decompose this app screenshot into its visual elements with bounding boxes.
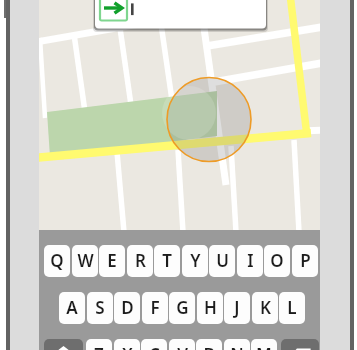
button[interactable]: P [292, 245, 318, 277]
button[interactable]: C [141, 339, 167, 350]
staticText: M [256, 343, 272, 350]
button[interactable]: M [251, 339, 277, 350]
staticText: V [177, 343, 188, 350]
staticText: T [162, 249, 172, 272]
staticText: X [122, 343, 133, 350]
staticText: A [66, 296, 78, 319]
staticText: E [107, 249, 117, 272]
button[interactable]: S [87, 292, 113, 324]
button[interactable]: V [169, 339, 195, 350]
button[interactable]: U [209, 245, 235, 277]
staticText: N [230, 343, 244, 350]
button[interactable]: Z [86, 339, 112, 350]
staticText: P [300, 249, 311, 272]
staticText: L [287, 296, 297, 319]
staticText: R [135, 249, 146, 272]
button[interactable]: Q [44, 245, 70, 277]
button[interactable]: G [169, 292, 195, 324]
staticText: W [77, 249, 94, 272]
staticText: F [150, 296, 160, 319]
button[interactable]: W [72, 245, 98, 277]
button[interactable]: B [196, 339, 222, 350]
staticText: S [95, 296, 105, 319]
button[interactable]: X [114, 339, 140, 350]
button[interactable]: L [279, 292, 305, 324]
staticText: Z [94, 343, 104, 350]
staticText: U [216, 249, 229, 272]
button[interactable]: T [154, 245, 180, 277]
button[interactable]: J [224, 292, 250, 324]
staticText: B [203, 343, 215, 350]
staticText: Q [50, 249, 64, 272]
button[interactable]: F [142, 292, 168, 324]
staticText: C [149, 343, 160, 350]
button[interactable]: D [114, 292, 140, 324]
staticText: O [270, 249, 284, 272]
staticText: G [176, 296, 189, 319]
staticText: J [234, 296, 240, 319]
button[interactable]: A [59, 292, 85, 324]
button[interactable]: Shift [44, 339, 83, 350]
button[interactable]: N [224, 339, 250, 350]
button[interactable]: E [99, 245, 125, 277]
button[interactable]: K [252, 292, 278, 324]
button[interactable]: I [237, 245, 263, 277]
button[interactable]: H [197, 292, 223, 324]
staticText: K [260, 296, 271, 319]
staticText: H [204, 296, 217, 319]
button[interactable]: R [127, 245, 153, 277]
button[interactable]: O [264, 245, 290, 277]
staticText: I [247, 249, 254, 272]
button[interactable]: Backspace [281, 339, 319, 350]
button[interactable]: Y [182, 245, 208, 277]
staticText: D [121, 296, 134, 319]
button[interactable] [93, 0, 268, 31]
staticText: Y [190, 249, 201, 272]
